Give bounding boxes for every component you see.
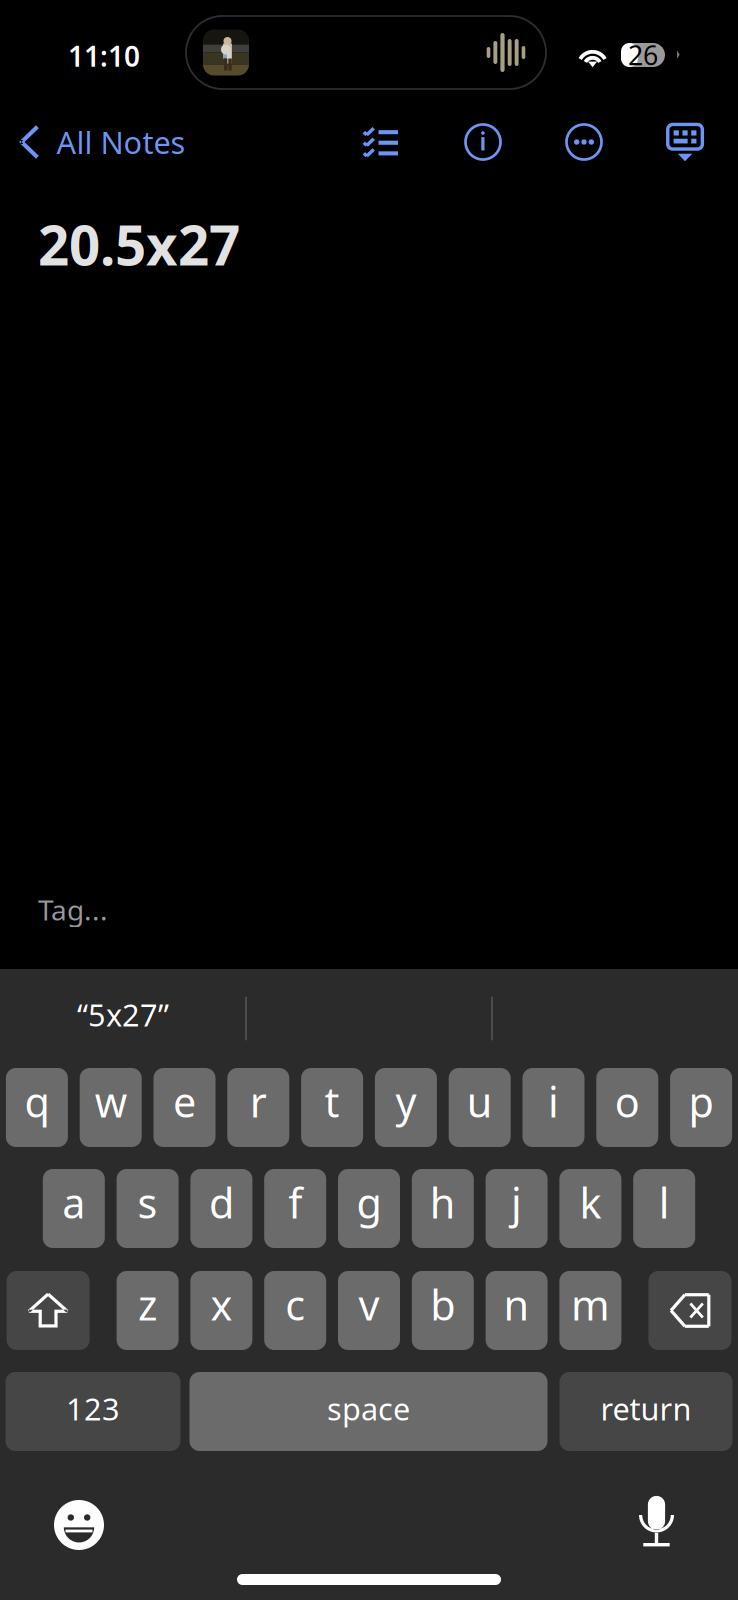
staticText: All Notes [56,122,185,162]
button[interactable]: Checklist [353,114,409,170]
staticText: 26 [628,37,658,73]
staticText: d [209,1175,234,1230]
staticText: p [689,1074,714,1129]
staticText: b [430,1277,455,1332]
staticText: l [659,1175,670,1230]
staticText: s [138,1175,158,1230]
button[interactable]: a [43,1169,105,1248]
button[interactable]: More [556,114,612,170]
staticText: t [325,1074,340,1129]
staticText: y [395,1074,416,1129]
button[interactable]: d [190,1169,252,1248]
button[interactable]: Emoji [42,1495,116,1555]
button[interactable]: y [375,1068,437,1147]
button[interactable]: s [117,1169,179,1248]
button[interactable]: n [486,1271,548,1350]
button[interactable]: q [6,1068,68,1147]
staticText: c [285,1277,305,1332]
staticText: “5x27” [77,994,169,1035]
staticText: h [430,1175,456,1230]
staticText: o [615,1074,640,1129]
button[interactable]: b [412,1271,474,1350]
staticText: 123 [66,1388,120,1429]
button[interactable]: z [117,1271,179,1350]
button[interactable]: space [189,1372,547,1451]
staticText: u [467,1074,493,1129]
staticText: i [548,1074,559,1129]
button[interactable]: Note Info [455,114,511,170]
staticText: w [95,1074,127,1129]
staticText: return [600,1388,691,1429]
staticText: r [250,1074,267,1129]
button[interactable]: f [264,1169,326,1248]
staticText: a [62,1175,85,1230]
staticText: k [579,1175,601,1230]
button[interactable]: i [522,1068,584,1147]
staticText: v [358,1277,379,1332]
staticText: n [504,1277,530,1332]
button[interactable]: k [559,1169,621,1248]
button[interactable]: l [633,1169,695,1248]
button[interactable]: g [338,1169,400,1248]
button[interactable]: Dictate [620,1491,694,1551]
staticText: q [24,1074,49,1129]
button[interactable]: j [486,1169,548,1248]
button[interactable]: return [559,1372,732,1451]
button[interactable]: w [80,1068,142,1147]
staticText: m [571,1277,610,1332]
staticText: Tag... [38,891,108,928]
staticText: x [210,1277,232,1332]
button[interactable]: Delete [648,1271,731,1350]
button[interactable]: Shift [7,1271,90,1350]
staticText: f [288,1175,302,1230]
button[interactable]: All Notes [0,114,230,170]
staticText: 20.5x27 [38,208,240,281]
staticText: 11:10 [68,37,140,75]
button[interactable]: h [412,1169,474,1248]
button[interactable]: “5x27” [0,969,246,1060]
button[interactable]: v [338,1271,400,1350]
button[interactable]: c [264,1271,326,1350]
staticText: e [173,1074,196,1129]
button[interactable]: t [301,1068,363,1147]
button[interactable]: u [449,1068,511,1147]
button[interactable]: p [670,1068,732,1147]
button[interactable]: r [227,1068,289,1147]
button[interactable]: m [559,1271,621,1350]
staticText: space [327,1388,410,1429]
button[interactable]: 123 [5,1372,180,1451]
button[interactable]: x [190,1271,252,1350]
button[interactable]: o [596,1068,658,1147]
staticText: j [511,1175,522,1230]
button[interactable]: e [153,1068,215,1147]
button[interactable]: Hide Keyboard [657,114,713,170]
staticText: z [138,1277,157,1332]
staticText: g [356,1175,381,1230]
